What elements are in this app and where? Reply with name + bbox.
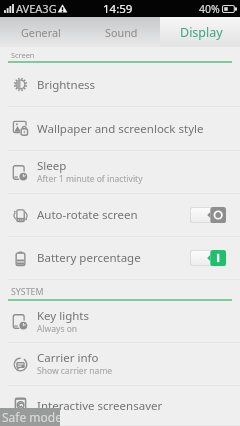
- staticText: Sound: [105, 25, 138, 40]
- staticText: Display: [180, 24, 223, 41]
- staticText: 14:59: [103, 1, 133, 17]
- button[interactable]: Wallpaper and screenlock style: [0, 107, 240, 151]
- button[interactable]: Auto-rotate screen: [0, 194, 240, 237]
- staticText: Sleep: [37, 158, 67, 174]
- staticText: After 1 minute of inactivity: [37, 173, 143, 185]
- button[interactable]: Interactive screensaver: [0, 386, 240, 426]
- button[interactable]: Sound: [80, 17, 160, 47]
- button[interactable]: Key lights: [0, 301, 240, 343]
- staticText: Brightness: [37, 77, 96, 93]
- staticText: Auto-rotate screen: [37, 207, 138, 223]
- button[interactable]: Battery percentage: [0, 237, 240, 280]
- staticText: Interactive screensaver: [37, 398, 163, 414]
- staticText: Show carrier name: [37, 365, 113, 377]
- staticText: Key lights: [37, 308, 90, 324]
- staticText: AVEA3G: [16, 1, 57, 16]
- staticText: Safe mode: [2, 409, 60, 425]
- button[interactable]: Display: [160, 17, 240, 47]
- button[interactable]: Carrier info: [0, 343, 240, 386]
- staticText: Always on: [37, 323, 78, 335]
- button[interactable]: Switch off: [190, 207, 226, 223]
- button[interactable]: Brightness: [0, 63, 240, 107]
- staticText: 40%: [199, 2, 220, 16]
- button[interactable]: General: [0, 17, 80, 47]
- staticText: General: [21, 25, 61, 40]
- button[interactable]: Sleep: [0, 151, 240, 194]
- staticText: Battery percentage: [37, 250, 141, 266]
- button[interactable]: Switch on: [190, 250, 226, 266]
- staticText: SYSTEM: [11, 286, 44, 298]
- staticText: Carrier info: [37, 350, 99, 366]
- staticText: Wallpaper and screenlock style: [37, 121, 204, 137]
- staticText: Screen: [11, 50, 35, 60]
